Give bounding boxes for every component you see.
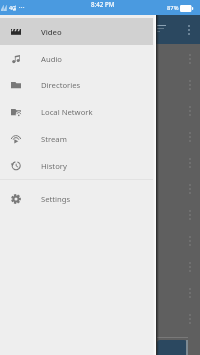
staticText: 4G xyxy=(9,4,17,11)
staticText: Local Network xyxy=(41,107,93,117)
staticText: 8:42 PM xyxy=(91,0,115,8)
button[interactable]: Audio xyxy=(0,45,156,72)
button[interactable]: Video xyxy=(0,18,156,45)
staticText: Directories xyxy=(41,80,81,90)
button[interactable]: Settings xyxy=(0,185,156,212)
staticText: 87% xyxy=(167,4,179,12)
staticText: History xyxy=(41,161,67,171)
staticText: Stream xyxy=(41,134,67,144)
button[interactable]: Stream xyxy=(0,125,156,152)
staticText: Settings xyxy=(41,194,71,204)
button[interactable]: Directories xyxy=(0,71,156,98)
staticText: Video xyxy=(41,27,62,37)
button[interactable]: Local Network xyxy=(0,98,156,125)
staticText: Audio xyxy=(41,54,63,64)
button[interactable]: History xyxy=(0,152,156,179)
